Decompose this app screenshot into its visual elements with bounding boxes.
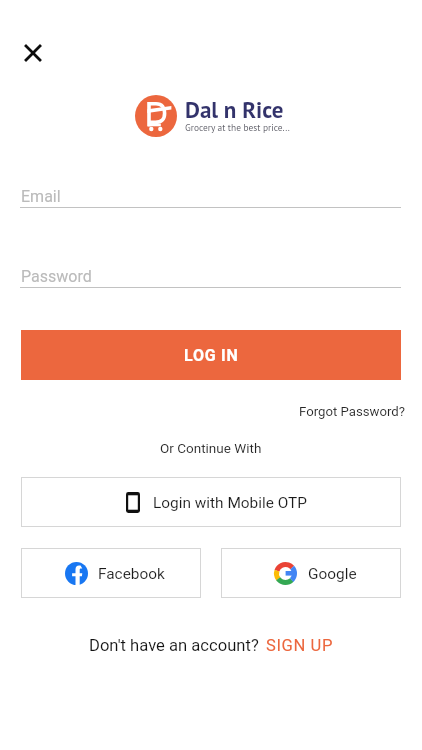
staticText: Email <box>21 187 61 206</box>
staticText: Google <box>308 565 357 583</box>
button[interactable]: LOG IN <box>21 330 401 380</box>
button[interactable]: Facebook <box>21 548 201 598</box>
staticText: LOG IN <box>184 346 239 365</box>
button[interactable]: Forgot Password? <box>291 401 414 422</box>
staticText: Forgot Password? <box>299 404 406 419</box>
button[interactable]: Close <box>17 37 49 69</box>
staticText: Grocery at the best price... <box>185 121 290 133</box>
button[interactable]: Login with Mobile OTP <box>21 477 401 527</box>
button[interactable]: Google <box>221 548 401 598</box>
button[interactable]: SIGN UP <box>259 636 334 655</box>
staticText: Password <box>21 267 92 286</box>
staticText: Or Continue With <box>160 440 262 456</box>
staticText: SIGN UP <box>266 636 334 655</box>
staticText: Facebook <box>98 565 165 583</box>
staticText: Don't have an account? <box>89 636 259 655</box>
staticText: Login with Mobile OTP <box>153 494 308 512</box>
staticText: Dal n Rice <box>185 95 284 125</box>
